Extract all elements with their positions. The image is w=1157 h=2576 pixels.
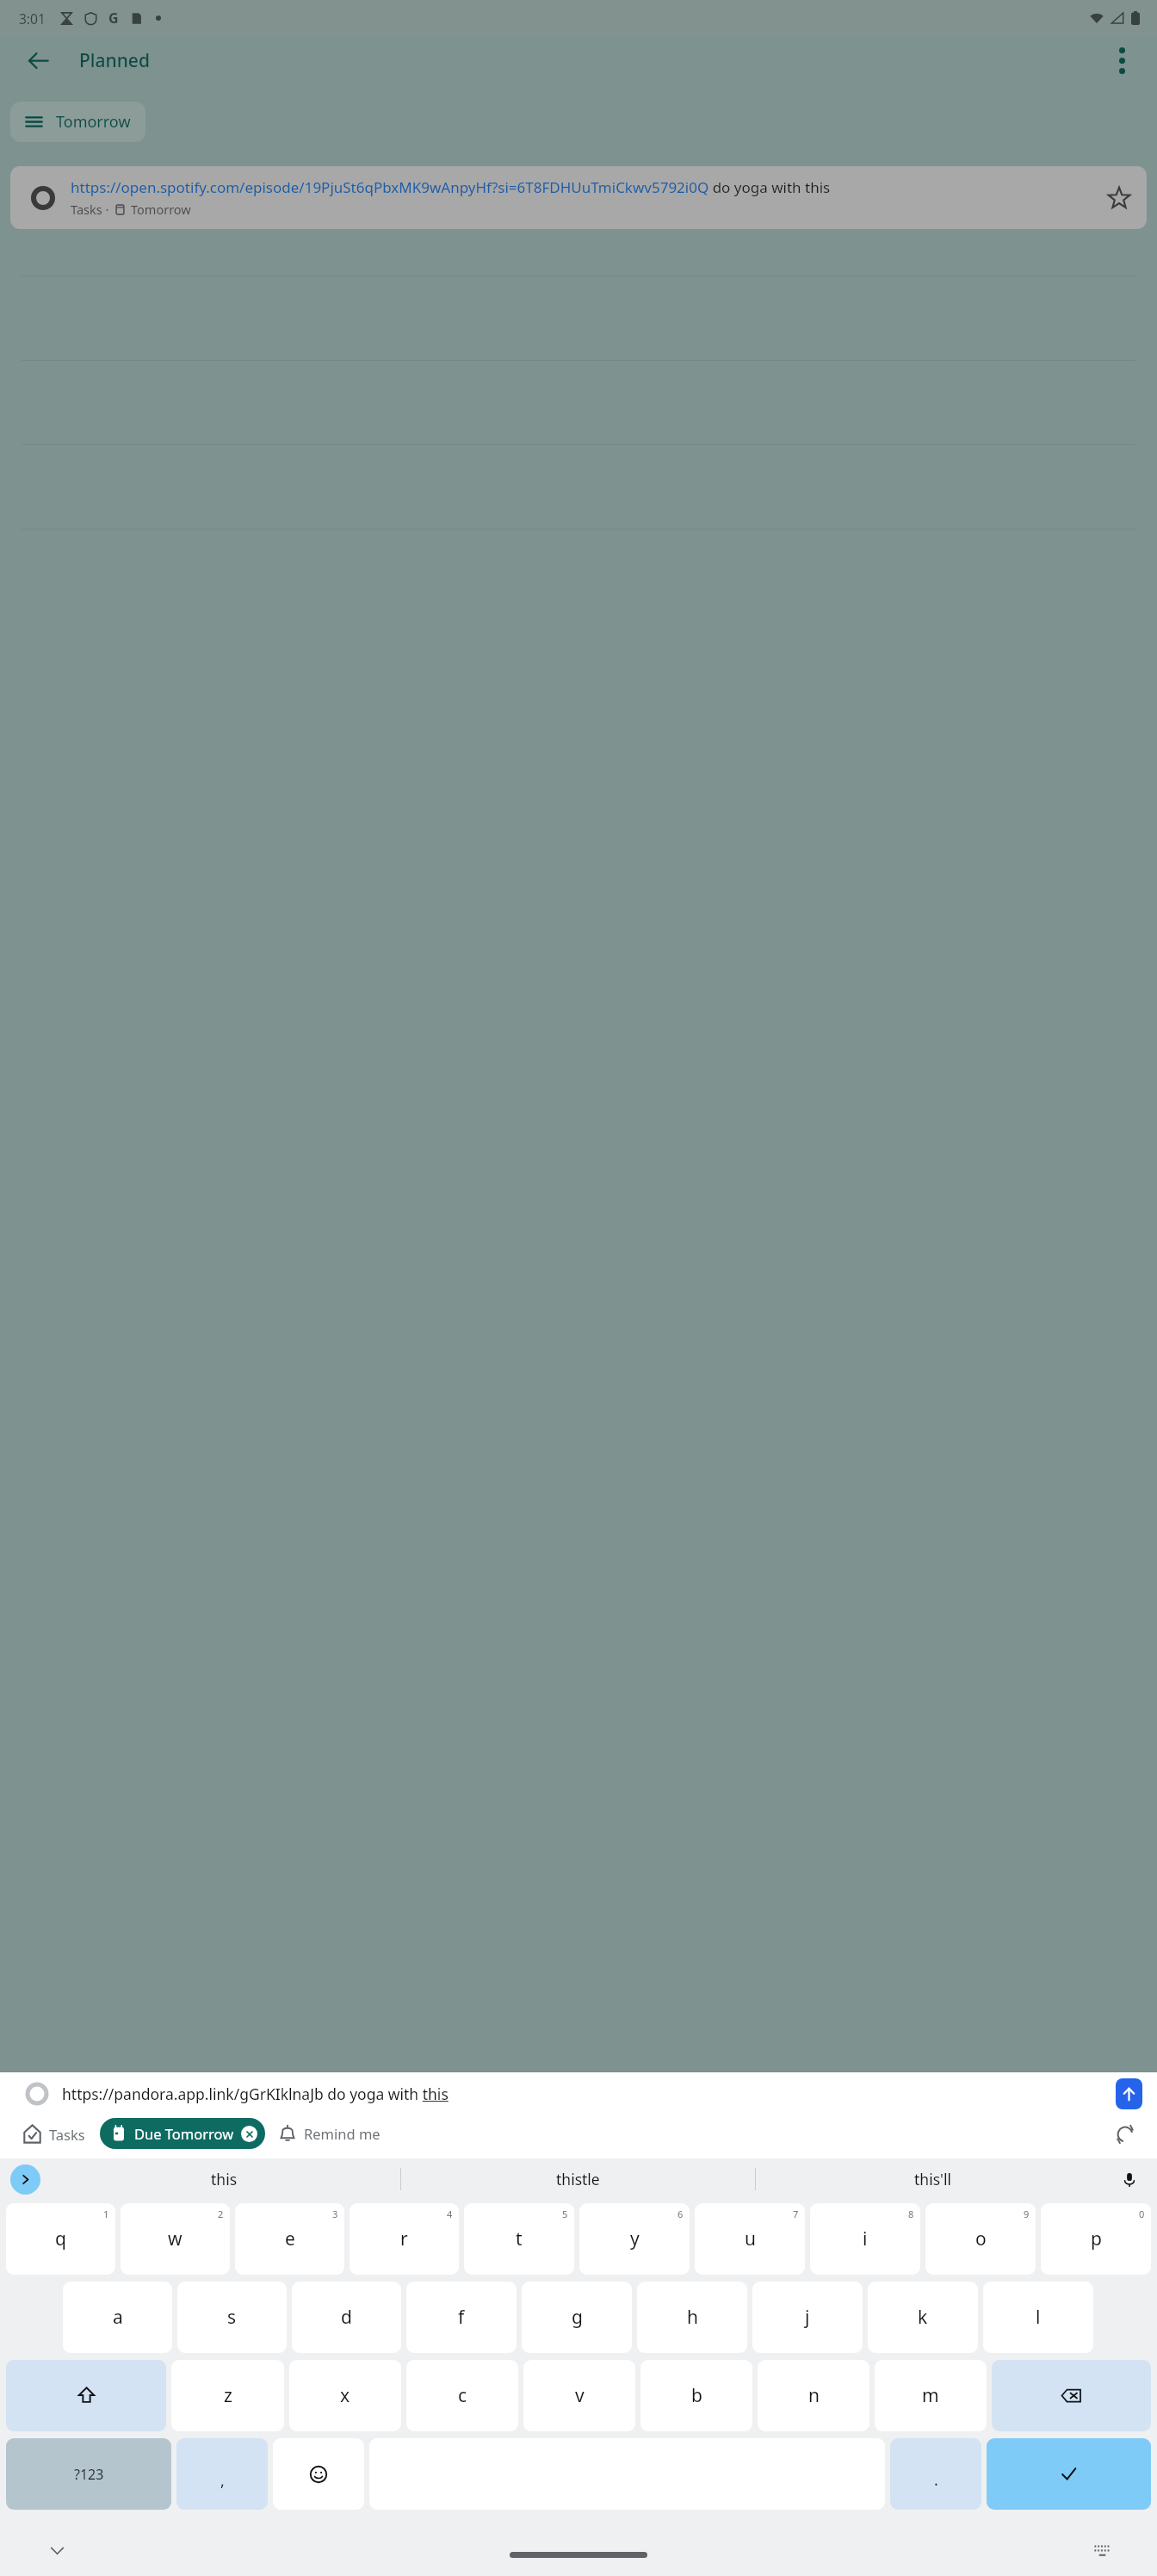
button[interactable]: Expand suggestions: [10, 2164, 40, 2195]
button[interactable]: Tomorrow: [10, 102, 145, 142]
staticText: 5: [562, 2208, 568, 2220]
button[interactable]: Mark complete: [26, 181, 59, 214]
staticText: Tasks ·: [71, 201, 109, 218]
button[interactable]: ?123: [6, 2438, 171, 2510]
button[interactable]: b: [640, 2360, 752, 2431]
staticText: t: [516, 2226, 523, 2251]
staticText: Planned: [79, 48, 150, 73]
staticText: 2: [218, 2208, 224, 2220]
button[interactable]: z: [171, 2360, 284, 2431]
staticText: g: [572, 2305, 583, 2330]
staticText: e: [285, 2226, 295, 2251]
button[interactable]: 2: [121, 2203, 230, 2275]
button[interactable]: 7: [695, 2203, 805, 2275]
button[interactable]: Repeat: [1110, 2119, 1140, 2149]
button[interactable]: h: [637, 2282, 747, 2353]
staticText: x: [340, 2383, 350, 2408]
button[interactable]: Due Tomorrow: [100, 2118, 265, 2149]
button[interactable]: f: [406, 2282, 517, 2353]
staticText: thistle: [556, 2169, 600, 2189]
button[interactable]: Send: [1116, 2078, 1142, 2109]
button[interactable]: thistle: [401, 2158, 755, 2200]
staticText: y: [630, 2226, 640, 2251]
button[interactable]: a: [63, 2282, 172, 2353]
staticText: q: [55, 2226, 66, 2251]
button[interactable]: l: [983, 2282, 1093, 2353]
button[interactable]: Back: [17, 40, 59, 81]
button[interactable]: s: [177, 2282, 287, 2353]
button[interactable]: Hide keyboard: [43, 2536, 71, 2564]
staticText: 7: [793, 2208, 799, 2220]
staticText: ?123: [74, 2465, 104, 2484]
button[interactable]: 0: [1041, 2203, 1151, 2275]
staticText: i: [863, 2226, 868, 2251]
staticText: o: [975, 2226, 987, 2251]
button[interactable]: Mark complete: [10, 166, 1147, 229]
staticText: v: [575, 2383, 585, 2408]
staticText: 3:01: [19, 9, 46, 28]
staticText: n: [808, 2383, 820, 2408]
button[interactable]: Shift: [6, 2360, 166, 2431]
staticText: c: [458, 2383, 467, 2408]
button[interactable]: 6: [579, 2203, 690, 2275]
button[interactable]: Backspace: [992, 2360, 1151, 2431]
button[interactable]: 5: [464, 2203, 574, 2275]
staticText: s: [227, 2305, 237, 2330]
button[interactable]: Period: [890, 2438, 981, 2510]
button[interactable]: n: [758, 2360, 869, 2431]
button[interactable]: this'll: [756, 2158, 1110, 2200]
button[interactable]: 1: [6, 2203, 115, 2275]
staticText: https://pandora.app.link/gGrKIklnaJb do …: [62, 2084, 449, 2104]
button[interactable]: Switch keyboard: [1088, 2536, 1116, 2564]
staticText: h: [687, 2305, 698, 2330]
button[interactable]: x: [289, 2360, 401, 2431]
staticText: 9: [1024, 2208, 1030, 2220]
button[interactable]: Voice input: [1115, 2165, 1143, 2194]
staticText: 3: [332, 2208, 338, 2220]
button[interactable]: 9: [925, 2203, 1036, 2275]
button[interactable]: Emoji: [273, 2438, 364, 2510]
button[interactable]: Tasks: [17, 2120, 90, 2148]
staticText: Due Tomorrow: [134, 2124, 234, 2143]
staticText: https://open.spotify.com/episode/19PjuSt…: [71, 177, 831, 197]
button[interactable]: this: [47, 2158, 400, 2200]
staticText: u: [745, 2226, 756, 2251]
staticText: b: [691, 2383, 702, 2408]
staticText: d: [341, 2305, 352, 2330]
staticText: r: [400, 2226, 408, 2251]
button[interactable]: m: [875, 2360, 987, 2431]
button[interactable]: k: [868, 2282, 978, 2353]
staticText: Tasks: [49, 2125, 85, 2144]
staticText: .: [934, 2469, 938, 2491]
staticText: Remind me: [304, 2124, 381, 2143]
button[interactable]: 4: [350, 2203, 459, 2275]
button[interactable]: Remind me: [274, 2120, 385, 2147]
staticText: 6: [677, 2208, 684, 2220]
button[interactable]: j: [752, 2282, 863, 2353]
staticText: Tomorrow: [131, 201, 191, 218]
staticText: j: [805, 2305, 810, 2330]
staticText: f: [458, 2305, 465, 2330]
staticText: 1: [103, 2208, 109, 2220]
button[interactable]: g: [522, 2282, 632, 2353]
button[interactable]: Done: [987, 2438, 1151, 2510]
staticText: 8: [908, 2208, 914, 2220]
button[interactable]: Star task: [1101, 180, 1137, 216]
button[interactable]: Comma: [176, 2438, 268, 2510]
staticText: w: [168, 2226, 183, 2251]
staticText: G: [108, 9, 119, 28]
staticText: 0: [1139, 2208, 1145, 2220]
staticText: m: [922, 2383, 939, 2408]
button[interactable]: c: [406, 2360, 518, 2431]
button[interactable]: 3: [235, 2203, 344, 2275]
staticText: Tomorrow: [56, 111, 131, 133]
button[interactable]: v: [523, 2360, 635, 2431]
staticText: z: [224, 2383, 232, 2408]
staticText: 4: [447, 2208, 453, 2220]
staticText: l: [1036, 2305, 1041, 2330]
button[interactable]: 8: [810, 2203, 920, 2275]
button[interactable]: d: [292, 2282, 401, 2353]
button[interactable]: More options: [1103, 41, 1142, 80]
staticText: p: [1091, 2226, 1102, 2251]
